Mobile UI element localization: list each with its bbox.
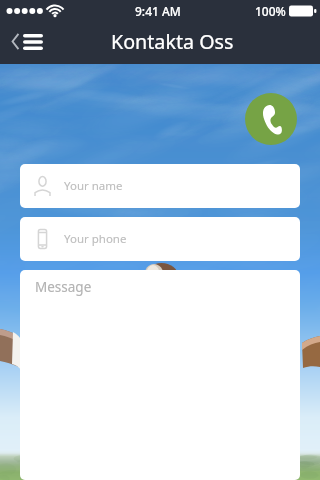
staticText: Message <box>35 278 92 296</box>
button[interactable]: Call <box>245 93 297 145</box>
button[interactable]: Your phone <box>20 217 300 261</box>
button[interactable]: Your name <box>20 164 300 208</box>
button[interactable]: Menu <box>6 28 49 55</box>
staticText: Your name <box>64 178 123 194</box>
staticText: Kontakta Oss <box>111 28 234 55</box>
staticText: 100% <box>255 3 286 19</box>
staticText: 9:41 AM <box>135 3 181 19</box>
button[interactable]: Message <box>20 270 300 480</box>
staticText: Your phone <box>64 231 127 247</box>
